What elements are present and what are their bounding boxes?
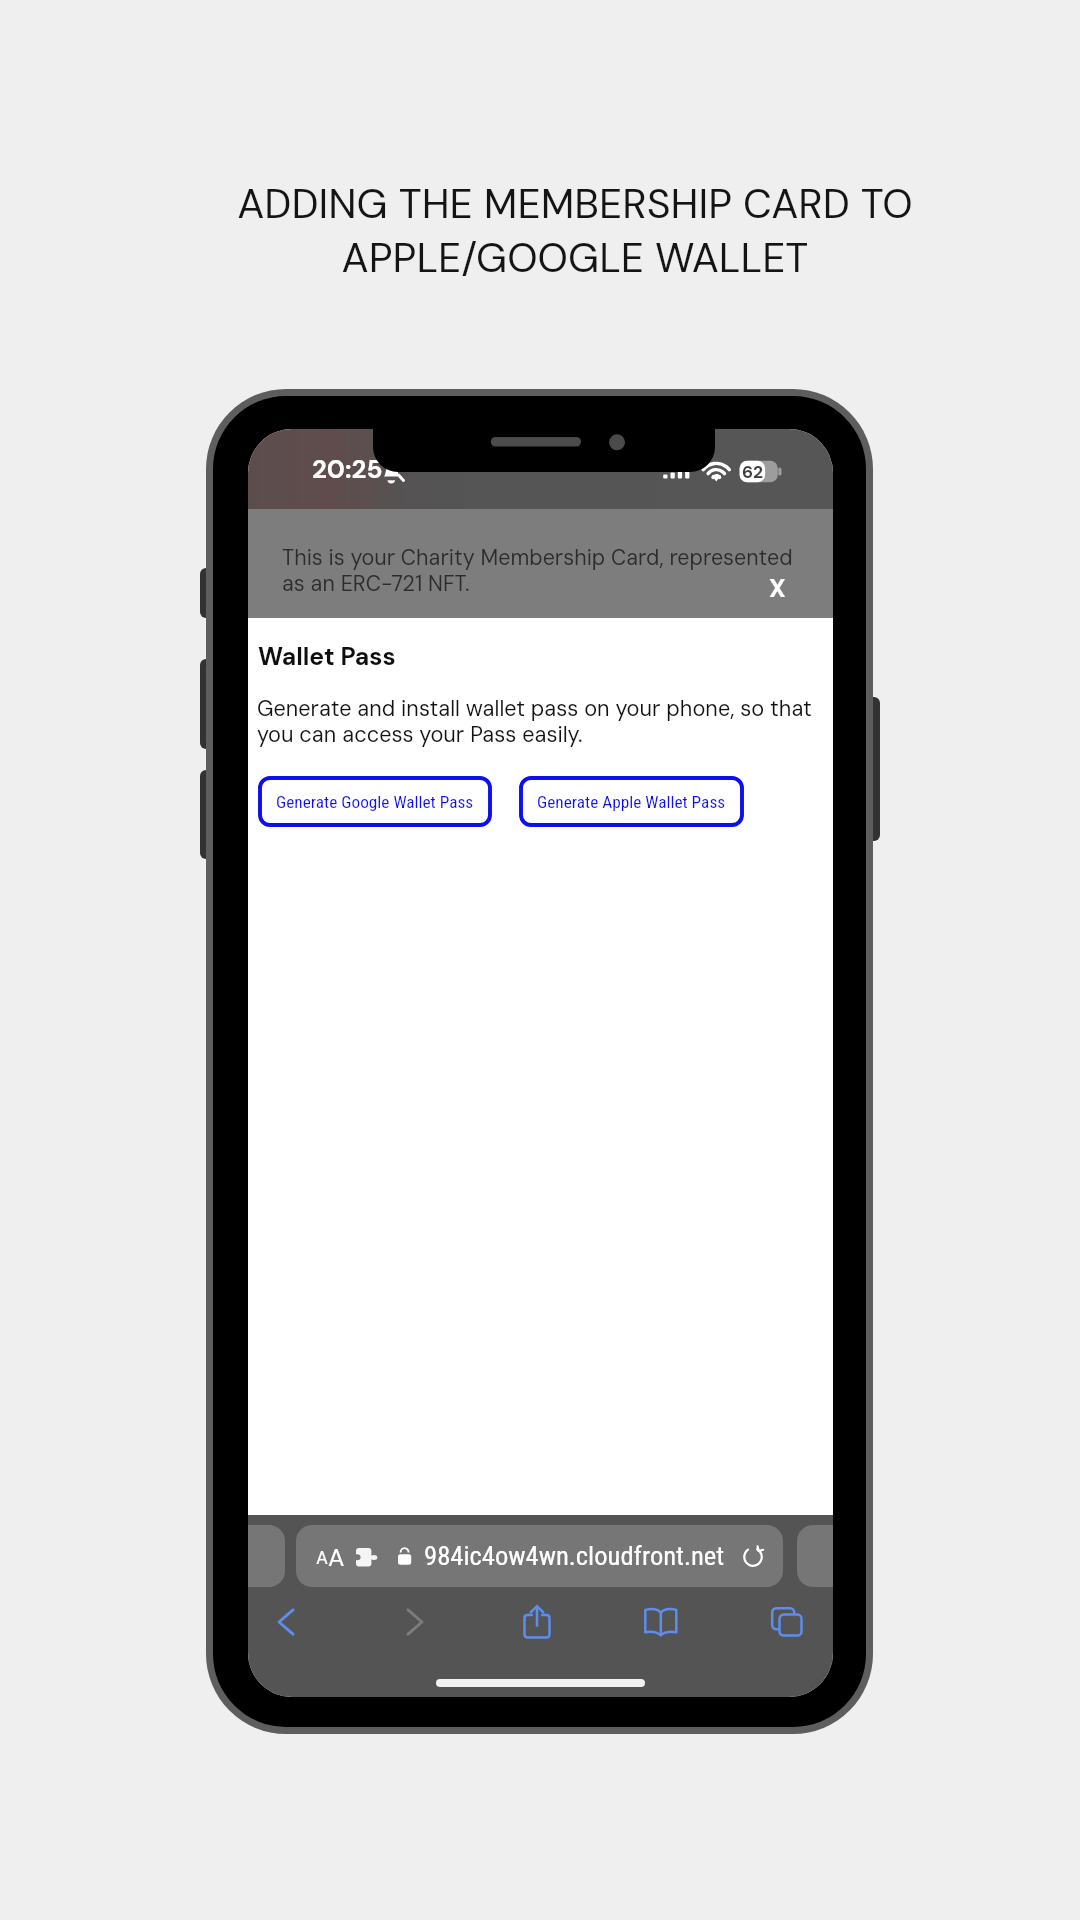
button[interactable]: Forward [388, 1595, 442, 1649]
staticText: A [328, 1541, 345, 1573]
staticText: Generate and install wallet pass on your… [257, 694, 822, 749]
button[interactable]: Close [754, 570, 800, 606]
button[interactable]: Bookmarks [634, 1595, 688, 1649]
staticText: Generate Google Wallet Pass [276, 792, 474, 812]
button[interactable]: Generate Apple Wallet Pass [519, 776, 744, 827]
staticText: ADDING THE MEMBERSHIP CARD TO APPLE/GOOG… [175, 178, 975, 284]
staticText: Wallet Pass [258, 640, 396, 672]
staticText: X [769, 572, 786, 605]
staticText: Generate Apple Wallet Pass [537, 792, 726, 812]
staticText: This is your Charity Membership Card, re… [282, 544, 794, 597]
button[interactable]: Tabs [759, 1595, 813, 1649]
button[interactable]: Generate Google Wallet Pass [258, 776, 492, 827]
button[interactable]: Back [259, 1595, 313, 1649]
button[interactable]: Address bar [296, 1525, 783, 1587]
staticText: 20:25 [312, 452, 383, 486]
staticText: 984ic4ow4wn.cloudfront.net [424, 1540, 725, 1571]
staticText: 62 [742, 461, 764, 484]
staticText: A [316, 1546, 328, 1569]
button[interactable]: Share [510, 1595, 564, 1649]
